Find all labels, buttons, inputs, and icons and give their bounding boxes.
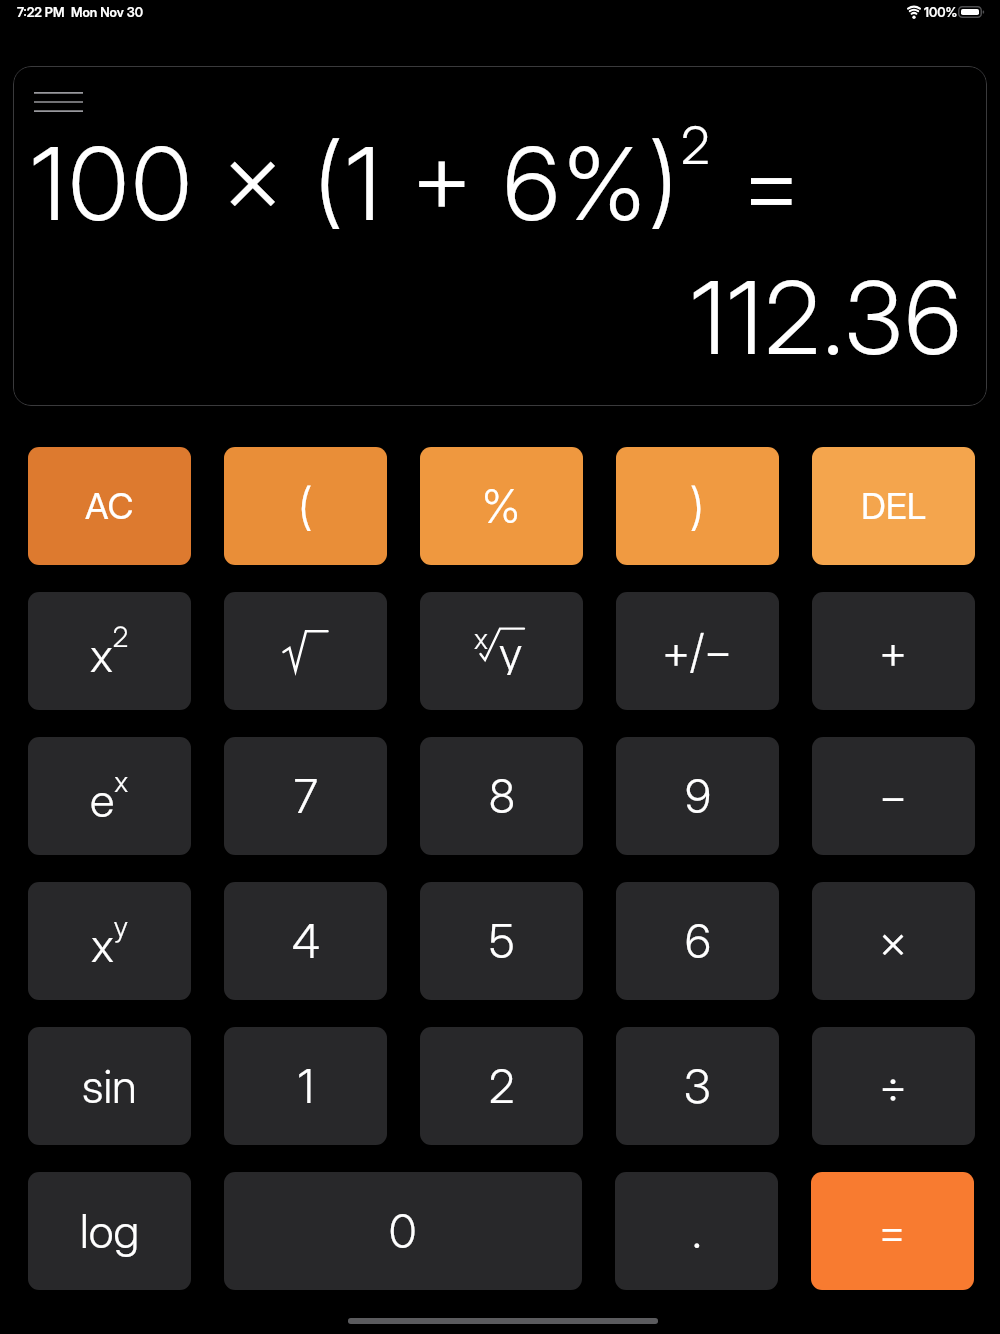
button[interactable]: ex: [28, 737, 191, 855]
button[interactable]: ×: [812, 882, 975, 1000]
button[interactable]: [224, 592, 387, 710]
staticText: sin: [82, 1058, 137, 1114]
staticText: +: [879, 623, 908, 679]
staticText: 1: [298, 1058, 314, 1114]
button[interactable]: 7: [224, 737, 387, 855]
staticText: x2: [90, 620, 129, 683]
button[interactable]: AC: [28, 447, 191, 565]
button[interactable]: +: [812, 592, 975, 710]
staticText: 6: [685, 913, 711, 969]
button[interactable]: 8: [420, 737, 583, 855]
button[interactable]: +/−: [616, 592, 779, 710]
button[interactable]: 6: [616, 882, 779, 1000]
staticText: 7: [294, 768, 318, 824]
button[interactable]: ÷: [812, 1027, 975, 1145]
staticText: 0: [389, 1203, 417, 1259]
staticText: −: [879, 768, 908, 824]
staticText: Mon Nov 30: [71, 4, 144, 20]
button[interactable]: .: [615, 1172, 778, 1290]
button[interactable]: ): [616, 447, 779, 565]
button[interactable]: DEL: [812, 447, 975, 565]
button[interactable]: 4: [224, 882, 387, 1000]
staticText: .: [692, 1203, 702, 1259]
button[interactable]: sin: [28, 1027, 191, 1145]
button[interactable]: x2: [28, 592, 191, 710]
staticText: DEL: [861, 484, 926, 528]
staticText: 100 × (1 + 6%)2 =: [31, 114, 806, 244]
staticText: %: [482, 478, 521, 534]
button[interactable]: 2: [420, 1027, 583, 1145]
button[interactable]: log: [28, 1172, 191, 1290]
button[interactable]: %: [420, 447, 583, 565]
staticText: 5: [489, 913, 515, 969]
button[interactable]: (: [224, 447, 387, 565]
staticText: 3: [684, 1058, 711, 1114]
staticText: 8: [489, 768, 515, 824]
button[interactable]: −: [812, 737, 975, 855]
staticText: 4: [292, 913, 320, 969]
button[interactable]: =: [811, 1172, 974, 1290]
staticText: 2: [489, 1058, 515, 1114]
button[interactable]: 100 × (1 + 6%)2 =: [13, 66, 987, 406]
staticText: 112.36: [691, 257, 964, 378]
staticText: log: [80, 1203, 140, 1259]
staticText: ×: [879, 913, 908, 969]
staticText: xy: [91, 910, 128, 973]
button[interactable]: 1: [224, 1027, 387, 1145]
staticText: 7:22 PM: [17, 4, 65, 20]
staticText: (: [298, 476, 313, 536]
staticText: AC: [85, 484, 134, 528]
button[interactable]: xy: [28, 882, 191, 1000]
staticText: 100%: [924, 4, 958, 20]
staticText: x: [474, 622, 488, 656]
staticText: +/−: [662, 623, 733, 679]
staticText: ÷: [879, 1058, 908, 1114]
button[interactable]: 9: [616, 737, 779, 855]
button[interactable]: 5: [420, 882, 583, 1000]
staticText: 9: [685, 768, 711, 824]
button[interactable]: 3: [616, 1027, 779, 1145]
button[interactable]: 0: [224, 1172, 582, 1290]
staticText: ): [690, 476, 705, 536]
staticText: y: [499, 625, 523, 675]
button[interactable]: x: [420, 592, 583, 710]
staticText: ex: [90, 765, 129, 828]
staticText: =: [878, 1203, 907, 1259]
